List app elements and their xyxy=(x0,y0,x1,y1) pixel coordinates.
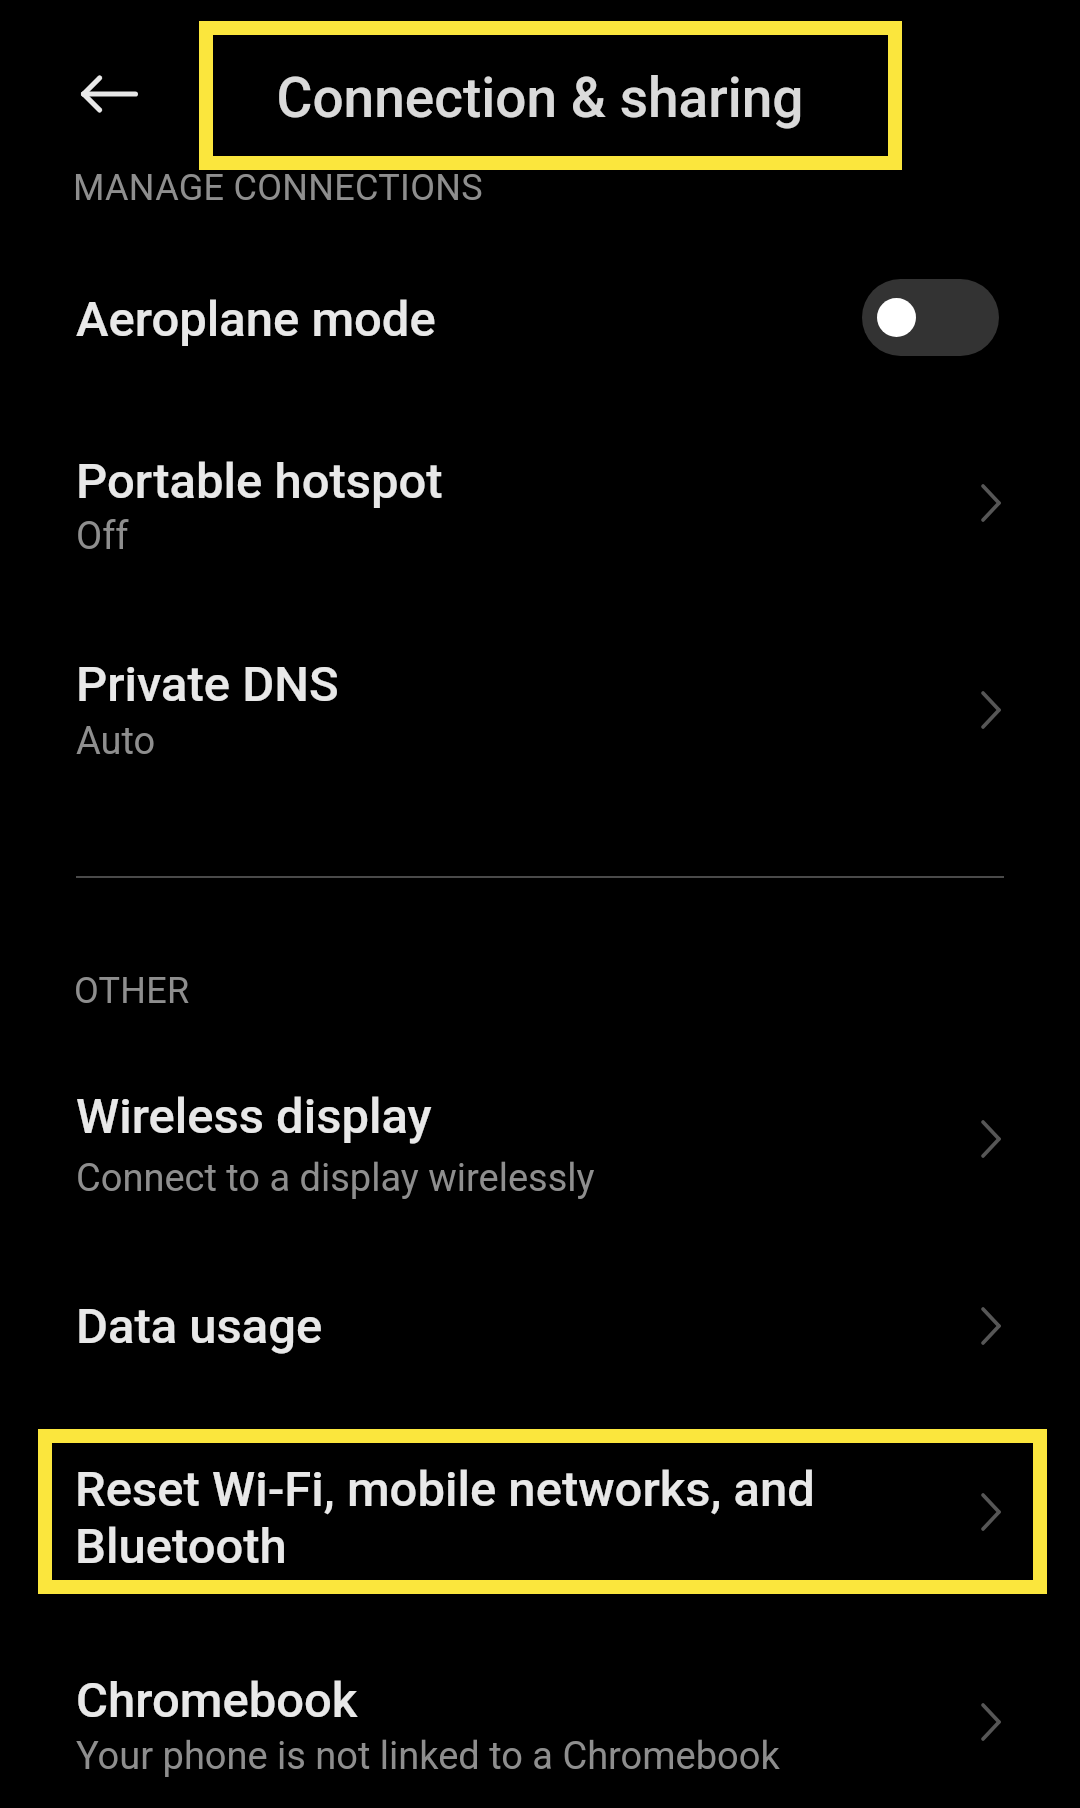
staticText: Auto xyxy=(76,719,156,764)
staticText: Connect to a display wirelessly xyxy=(76,1156,595,1201)
button[interactable]: Portable hotspot xyxy=(0,413,1080,603)
staticText: Chromebook xyxy=(76,1672,358,1729)
button[interactable]: Connection & sharing xyxy=(199,21,902,170)
staticText: Off xyxy=(76,514,129,559)
button[interactable]: Private DNS xyxy=(0,616,1080,806)
staticText: Wireless display xyxy=(76,1088,432,1145)
staticText: Portable hotspot xyxy=(76,453,443,510)
button[interactable]: Navigate back xyxy=(65,50,153,138)
staticText: Aeroplane mode xyxy=(76,291,436,348)
button[interactable]: Aeroplane mode xyxy=(0,251,1080,399)
staticText: MANAGE CONNECTIONS xyxy=(73,167,483,209)
staticText: Connection & sharing xyxy=(276,66,804,130)
button[interactable]: Chromebook xyxy=(0,1628,1080,1808)
button[interactable]: Wireless display xyxy=(0,1048,1080,1238)
staticText: Data usage xyxy=(76,1298,323,1355)
staticText: Reset Wi-Fi, mobile networks, and Blueto… xyxy=(75,1461,815,1575)
button[interactable]: Reset Wi-Fi, mobile networks, and Blueto… xyxy=(38,1429,1047,1594)
button[interactable]: Data usage xyxy=(0,1258,1080,1406)
staticText: Your phone is not linked to a Chromebook xyxy=(76,1734,780,1779)
staticText: Private DNS xyxy=(76,656,339,713)
staticText: OTHER xyxy=(74,970,190,1012)
